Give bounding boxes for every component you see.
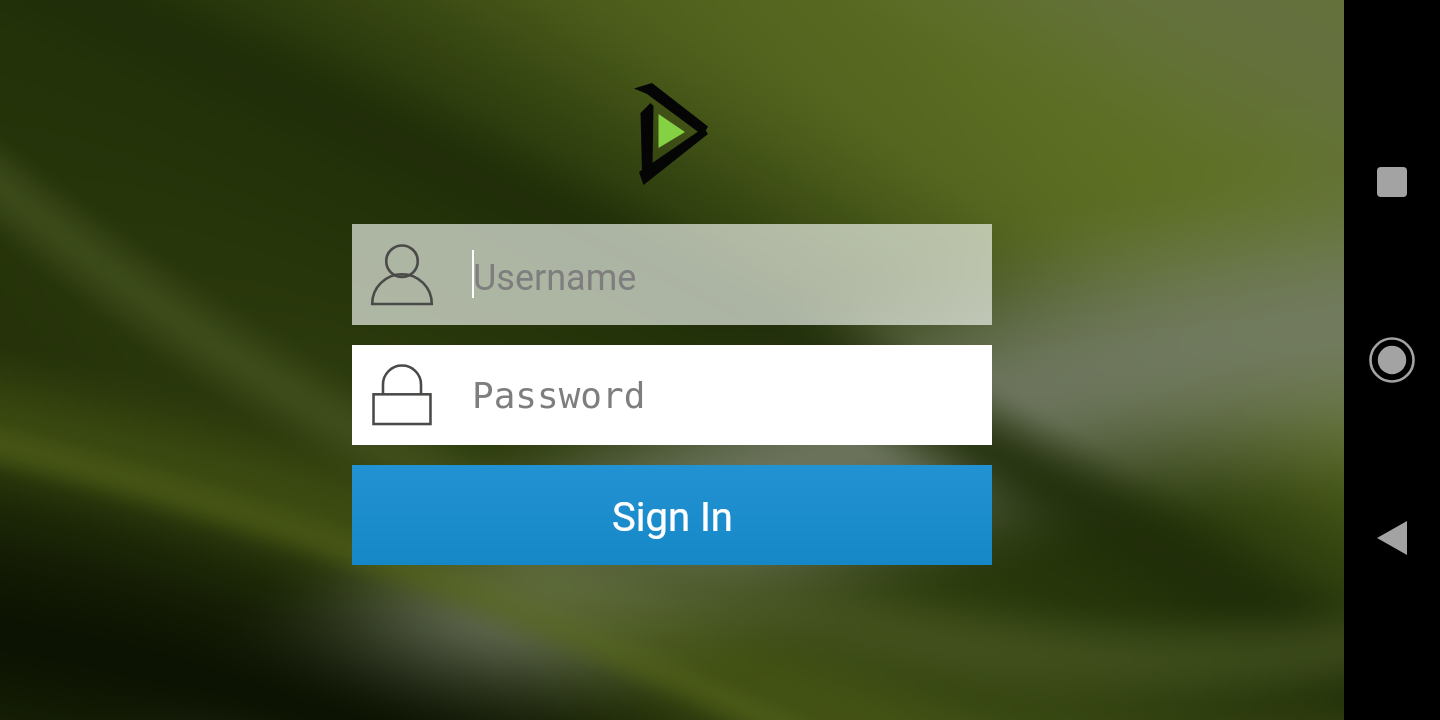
button[interactable]: Recent apps xyxy=(1346,136,1438,228)
staticText: Username xyxy=(473,257,637,299)
button[interactable]: Username xyxy=(352,224,992,325)
button[interactable]: Back xyxy=(1346,492,1438,584)
button[interactable]: Sign In xyxy=(352,465,992,565)
button[interactable]: Password xyxy=(352,345,992,445)
staticText: Password xyxy=(472,375,646,417)
staticText: Sign In xyxy=(612,494,733,541)
button[interactable]: Home xyxy=(1346,314,1438,406)
